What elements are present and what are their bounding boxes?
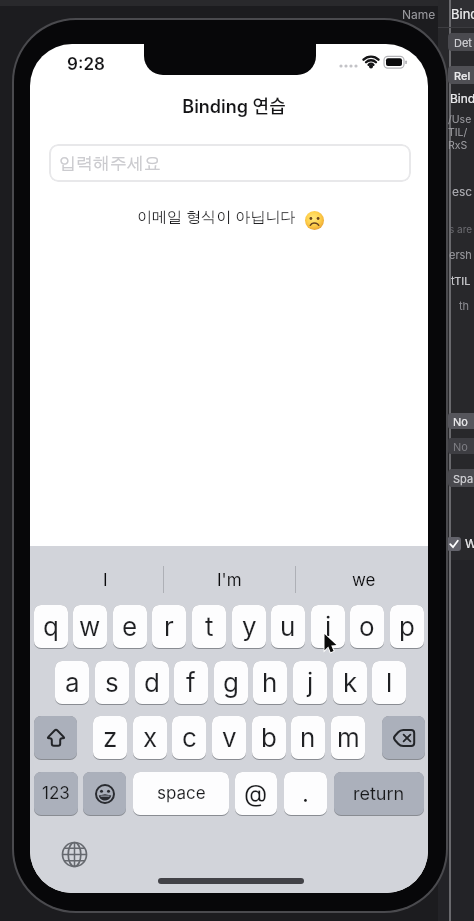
staticText: a <box>65 667 80 698</box>
staticText: j <box>307 667 314 698</box>
staticText: we <box>352 570 376 591</box>
staticText: Name <box>402 7 436 22</box>
button[interactable]: i <box>311 605 345 648</box>
staticText: e <box>122 611 138 642</box>
staticText: x <box>143 722 158 753</box>
button[interactable] <box>83 772 126 815</box>
staticText: . <box>302 779 309 808</box>
button[interactable]: No <box>448 413 474 429</box>
button[interactable] <box>447 537 461 551</box>
staticText: 123 <box>42 783 70 804</box>
staticText: s are <box>449 223 473 235</box>
button[interactable]: s <box>95 661 129 704</box>
button[interactable]: t <box>192 605 226 648</box>
button[interactable]: w <box>73 605 107 648</box>
button[interactable]: I <box>39 558 172 602</box>
staticText: No <box>453 415 468 428</box>
staticText: g <box>223 667 239 698</box>
staticText: 이메일 형식이 아닙니다 <box>137 207 296 226</box>
staticText: b <box>261 722 277 753</box>
button[interactable]: z <box>93 716 127 759</box>
button[interactable]: l <box>372 661 406 704</box>
staticText: f <box>186 667 196 698</box>
staticText: Det <box>454 36 472 49</box>
button[interactable]: y <box>232 605 266 648</box>
staticText: return <box>353 783 405 805</box>
staticText: Bind <box>451 6 474 22</box>
button[interactable]: o <box>350 605 384 648</box>
staticText: q <box>43 611 59 642</box>
button[interactable]: f <box>174 661 208 704</box>
button[interactable]: No <box>448 438 474 454</box>
staticText: t <box>205 611 214 642</box>
staticText: z <box>103 722 118 753</box>
button[interactable]: q <box>34 605 68 648</box>
staticText: m <box>337 722 360 753</box>
button[interactable]: v <box>212 716 246 759</box>
staticText: s <box>105 667 119 698</box>
staticText: p <box>399 611 415 642</box>
staticText: th <box>459 299 470 312</box>
button[interactable]: d <box>135 661 169 704</box>
button[interactable]: 입력해주세요 <box>49 144 411 182</box>
button[interactable]: 123 <box>34 772 78 815</box>
button[interactable] <box>61 841 88 868</box>
button[interactable]: m <box>331 716 365 759</box>
staticText: 입력해주세요 <box>59 153 161 174</box>
staticText: i <box>325 611 332 642</box>
button[interactable]: I'm <box>163 558 296 602</box>
button[interactable]: a <box>55 661 89 704</box>
button[interactable]: return <box>334 772 424 815</box>
button[interactable]: u <box>271 605 305 648</box>
staticText: d <box>144 667 160 698</box>
staticText: TIL/ <box>448 126 468 139</box>
button[interactable]: space <box>133 772 229 815</box>
button[interactable]: . <box>284 772 327 815</box>
staticText: Spa <box>453 472 474 485</box>
button[interactable]: Det <box>448 33 474 51</box>
button[interactable] <box>34 716 77 759</box>
staticText: tTIL <box>451 274 471 287</box>
staticText: l <box>386 667 393 698</box>
button[interactable]: g <box>214 661 248 704</box>
button[interactable]: p <box>390 605 424 648</box>
staticText: No <box>453 440 468 453</box>
button[interactable]: k <box>333 661 367 704</box>
staticText: w <box>79 611 101 642</box>
button[interactable] <box>382 716 425 759</box>
staticText: 9:28 <box>51 54 121 75</box>
staticText: h <box>262 667 278 698</box>
button[interactable]: x <box>133 716 167 759</box>
staticText: I <box>103 570 108 591</box>
staticText: Bind <box>450 91 474 106</box>
button[interactable]: we <box>297 558 428 602</box>
staticText: y <box>242 611 257 642</box>
button[interactable]: Rel <box>448 66 474 84</box>
button[interactable]: e <box>113 605 147 648</box>
staticText: W <box>465 536 474 551</box>
staticText: k <box>343 667 358 698</box>
button[interactable]: r <box>152 605 186 648</box>
button[interactable]: @ <box>235 772 277 815</box>
button[interactable]: Spa <box>448 469 474 487</box>
staticText: Rel <box>454 69 471 82</box>
button[interactable]: c <box>172 716 206 759</box>
staticText: ersh <box>449 248 472 261</box>
staticText: v <box>222 722 237 753</box>
staticText: @ <box>244 779 268 808</box>
staticText: /Use <box>448 113 472 126</box>
button[interactable]: b <box>252 716 286 759</box>
staticText: n <box>300 722 316 753</box>
button[interactable]: j <box>293 661 327 704</box>
staticText: esc <box>452 184 473 199</box>
button[interactable]: h <box>253 661 287 704</box>
staticText: space <box>157 783 206 804</box>
staticText: u <box>280 611 296 642</box>
staticText: RxS <box>448 139 468 152</box>
button[interactable]: n <box>291 716 325 759</box>
staticText: Binding 연습 <box>35 92 428 118</box>
staticText: I'm <box>217 570 242 591</box>
staticText: c <box>182 722 197 753</box>
staticText: o <box>359 611 375 642</box>
